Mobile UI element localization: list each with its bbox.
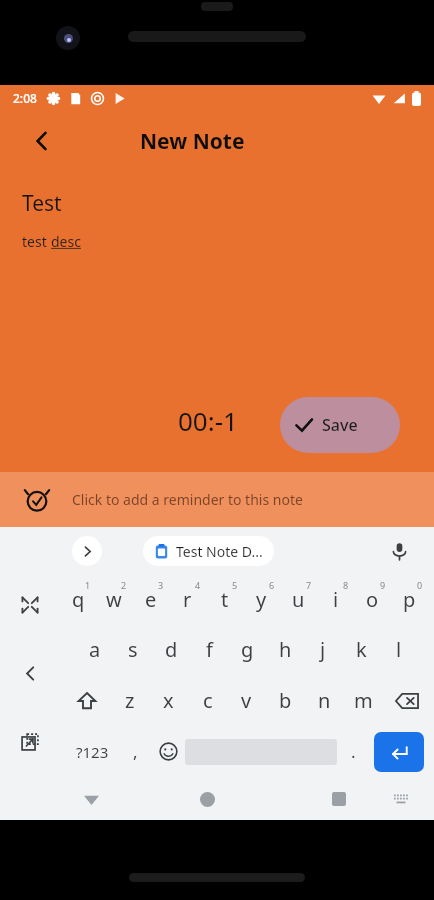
button[interactable]: o: [354, 574, 391, 624]
staticText: 9: [380, 579, 386, 591]
staticText: e: [145, 586, 157, 613]
staticText: m: [354, 687, 373, 714]
button[interactable]: d: [152, 624, 190, 675]
staticText: 8: [343, 579, 349, 591]
button[interactable]: g: [228, 624, 266, 675]
button[interactable]: Open in new window: [13, 725, 47, 759]
button[interactable]: Back: [20, 119, 64, 163]
staticText: w: [106, 586, 122, 613]
button[interactable]: u: [280, 574, 317, 624]
button[interactable]: s: [114, 624, 152, 675]
button[interactable]: Shift: [64, 675, 110, 726]
staticText: Test Note D...: [176, 542, 263, 561]
button[interactable]: y: [243, 574, 280, 624]
staticText: y: [256, 586, 267, 613]
staticText: Test: [22, 189, 62, 218]
button[interactable]: z: [110, 675, 149, 726]
button[interactable]: a: [76, 624, 114, 675]
staticText: test: [22, 232, 51, 251]
button[interactable]: Emoji: [152, 726, 185, 777]
staticText: desc: [51, 232, 81, 251]
staticText: .: [351, 740, 356, 763]
staticText: 4: [195, 579, 201, 591]
button[interactable]: t: [206, 574, 243, 624]
button[interactable]: w: [96, 574, 132, 624]
staticText: h: [279, 636, 292, 663]
staticText: j: [320, 636, 326, 663]
staticText: New Note: [140, 127, 245, 156]
button[interactable]: q: [60, 574, 96, 624]
button[interactable]: e: [132, 574, 169, 624]
button[interactable]: x: [149, 675, 188, 726]
button[interactable]: Switch keyboard: [386, 784, 416, 814]
staticText: p: [403, 586, 416, 613]
staticText: c: [203, 687, 213, 714]
staticText: 5: [232, 579, 238, 591]
button[interactable]: Resize keyboard: [13, 588, 47, 622]
staticText: 0: [417, 579, 423, 591]
staticText: k: [356, 636, 367, 663]
button[interactable]: Previous: [13, 656, 47, 690]
staticText: u: [292, 586, 305, 613]
button[interactable]: n: [305, 675, 344, 726]
staticText: q: [72, 586, 85, 613]
staticText: z: [125, 687, 135, 714]
staticText: f: [206, 636, 213, 663]
staticText: Save: [322, 414, 358, 436]
staticText: b: [279, 687, 292, 714]
staticText: n: [318, 687, 331, 714]
button[interactable]: More suggestions: [72, 536, 102, 566]
staticText: 00:-1: [178, 403, 238, 438]
staticText: Click to add a reminder to this note: [72, 490, 303, 509]
button[interactable]: Recents: [322, 782, 356, 816]
button[interactable]: Backspace: [383, 675, 430, 726]
button[interactable]: b: [266, 675, 305, 726]
staticText: ,: [133, 740, 138, 763]
button[interactable]: ?123: [66, 726, 119, 777]
button[interactable]: Enter: [374, 732, 424, 772]
button[interactable]: ,: [119, 726, 152, 777]
button[interactable]: f: [190, 624, 228, 675]
button[interactable]: l: [380, 624, 418, 675]
button[interactable]: h: [266, 624, 304, 675]
button[interactable]: i: [317, 574, 354, 624]
staticText: ?123: [76, 742, 109, 762]
button[interactable]: j: [304, 624, 342, 675]
staticText: g: [241, 636, 254, 663]
button[interactable]: m: [344, 675, 383, 726]
staticText: 7: [306, 579, 312, 591]
staticText: 2:08: [13, 90, 37, 106]
staticText: r: [183, 586, 192, 613]
button[interactable]: .: [337, 726, 370, 777]
staticText: 6: [269, 579, 275, 591]
staticText: l: [396, 636, 402, 663]
staticText: v: [241, 687, 252, 714]
staticText: 2: [121, 579, 127, 591]
staticText: 1: [85, 579, 91, 591]
button[interactable]: Back: [74, 782, 108, 816]
staticText: a: [89, 636, 101, 663]
staticText: x: [163, 687, 174, 714]
button[interactable]: r: [169, 574, 206, 624]
button[interactable]: k: [342, 624, 380, 675]
button[interactable]: Home: [190, 782, 224, 816]
staticText: o: [366, 586, 379, 613]
staticText: s: [128, 636, 138, 663]
staticText: 3: [158, 579, 164, 591]
staticText: t: [221, 586, 229, 613]
button[interactable]: Test Note D...: [143, 536, 274, 566]
button[interactable]: c: [188, 675, 227, 726]
button[interactable]: Save: [280, 397, 400, 453]
staticText: d: [165, 636, 178, 663]
button[interactable]: Click to add a reminder to this note: [0, 472, 434, 527]
button[interactable]: v: [227, 675, 266, 726]
staticText: i: [333, 586, 339, 613]
button[interactable]: Voice input: [384, 536, 414, 566]
button[interactable]: p: [391, 574, 428, 624]
